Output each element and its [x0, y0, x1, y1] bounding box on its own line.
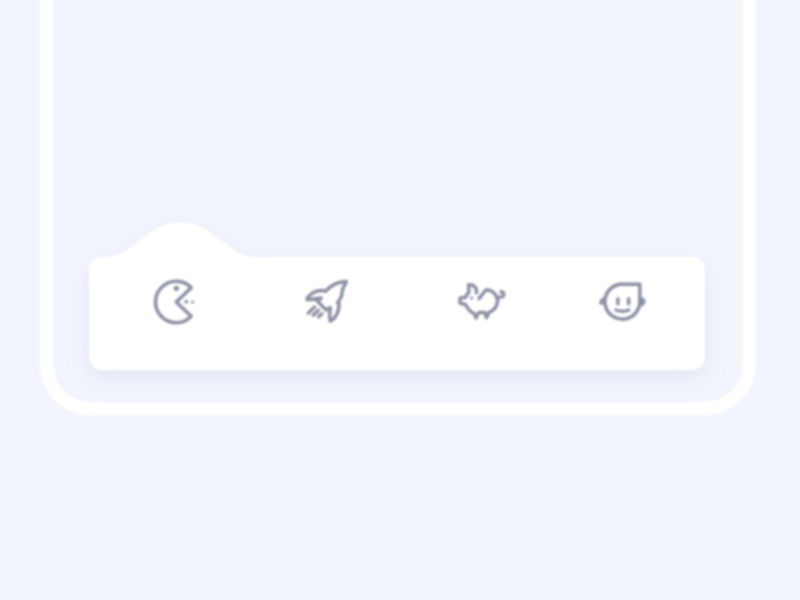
button[interactable]: Games	[137, 258, 211, 371]
button[interactable]: Profile	[585, 258, 659, 371]
button[interactable]: Explore	[289, 258, 363, 371]
button[interactable]: Savings	[444, 258, 518, 371]
